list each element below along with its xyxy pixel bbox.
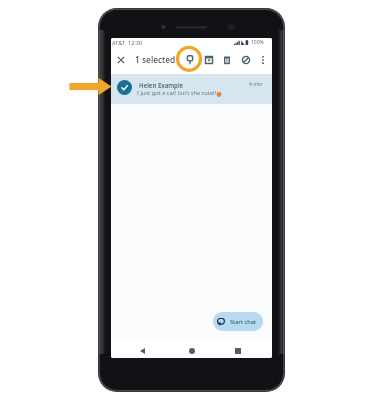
button[interactable]: Archive [201, 52, 217, 68]
button[interactable]: Start chat [213, 312, 263, 331]
staticText: 1 selected [135, 54, 176, 65]
button[interactable]: Home [186, 345, 198, 357]
button[interactable]: Block [238, 52, 254, 68]
staticText: AT&T 12:30 [112, 39, 143, 47]
button[interactable]: Pin [182, 52, 198, 68]
staticText: 4 min [249, 81, 263, 88]
button[interactable]: More options [255, 52, 271, 68]
button[interactable]: Helen Example [111, 74, 272, 104]
staticText: 100% [251, 39, 264, 46]
button[interactable]: Recents [232, 345, 244, 357]
button[interactable]: Delete [219, 52, 235, 68]
staticText: Helen Example [139, 81, 184, 89]
button[interactable]: Back [136, 345, 148, 357]
button[interactable]: Close selection [113, 52, 129, 68]
staticText: I just got a cat! Isn't she cute!! [137, 89, 217, 97]
staticText: Start chat [230, 318, 256, 326]
